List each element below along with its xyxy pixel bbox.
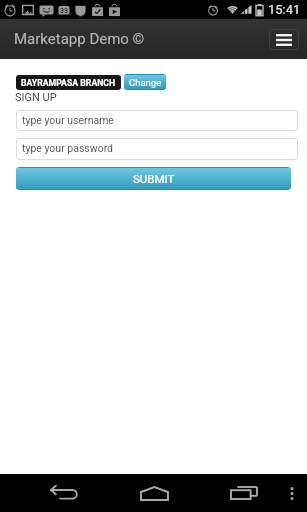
button[interactable]: type your username	[16, 110, 298, 131]
button[interactable]: Home	[132, 477, 176, 509]
button[interactable]: More options	[280, 477, 303, 509]
staticText: type your username	[22, 114, 114, 126]
staticText: type your password	[22, 142, 114, 154]
staticText: SUBMIT	[133, 172, 175, 185]
staticText: Change	[129, 77, 162, 88]
button[interactable]: Change	[124, 75, 166, 89]
staticText: 33	[60, 7, 69, 15]
staticText: SIGN UP	[15, 91, 57, 104]
button[interactable]: Open navigation menu	[269, 29, 299, 50]
staticText: BAYRAMPASA BRANCH	[21, 78, 116, 88]
button[interactable]: type your password	[16, 138, 298, 160]
button[interactable]: SUBMIT	[16, 168, 291, 189]
button[interactable]: Back	[42, 477, 86, 509]
staticText: 15:41	[268, 2, 301, 17]
staticText: Marketapp Demo ©	[14, 30, 145, 48]
button[interactable]: Recent apps	[222, 477, 266, 509]
